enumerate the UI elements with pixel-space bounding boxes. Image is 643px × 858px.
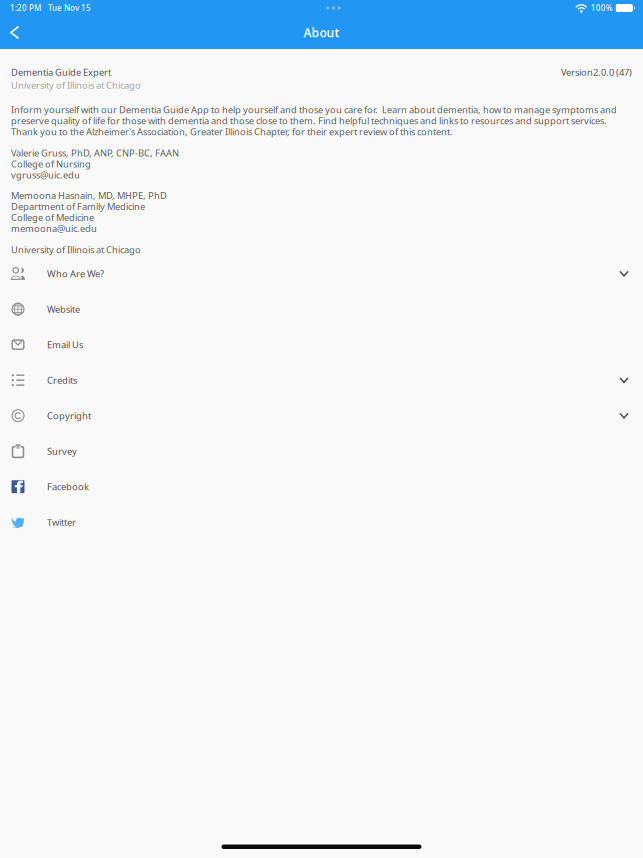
button[interactable]: Email Us <box>0 327 643 362</box>
button[interactable]: Survey <box>0 433 643 469</box>
staticText: 100% <box>591 3 613 13</box>
staticText: Credits <box>47 374 77 386</box>
staticText: Twitter <box>47 516 76 528</box>
button[interactable]: Who Are We? <box>0 256 643 291</box>
button[interactable]: Credits <box>0 362 643 398</box>
staticText: memoona@uic.edu <box>11 222 97 234</box>
staticText: Memoona Hasnain, MD, MHPE, PhD <box>11 189 167 201</box>
staticText: College of Nursing <box>11 158 91 170</box>
button[interactable]: Website <box>0 291 643 327</box>
staticText: Survey <box>47 445 77 457</box>
staticText: Email Us <box>47 338 83 351</box>
staticText: Dementia Guide Expert <box>11 66 111 78</box>
staticText: Tue Nov 15 <box>48 3 91 13</box>
staticText: Version2.0.0 (47) <box>561 66 632 78</box>
staticText: University of Illinois at Chicago <box>11 243 141 256</box>
staticText: College of Medicine <box>11 211 94 223</box>
button[interactable]: Back <box>0 17 30 47</box>
staticText: vgruss@uic.edu <box>11 169 80 181</box>
button[interactable]: Copyright <box>0 398 643 433</box>
staticText: Who Are We? <box>47 267 104 280</box>
staticText: Valerie Gruss, PhD, ANP, CNP-BC, FAAN <box>11 147 179 159</box>
staticText: University of Illinois at Chicago <box>11 79 141 91</box>
staticText: 1:20 PM <box>10 3 41 13</box>
staticText: Copyright <box>47 409 91 422</box>
staticText: Inform yourself with our Dementia Guide … <box>11 103 617 138</box>
staticText: Facebook <box>47 480 89 493</box>
staticText: Department of Family Medicine <box>11 200 145 212</box>
button[interactable]: Facebook <box>0 469 643 504</box>
staticText: About <box>303 24 339 40</box>
staticText: Website <box>47 303 80 315</box>
button[interactable]: Twitter <box>0 504 643 540</box>
